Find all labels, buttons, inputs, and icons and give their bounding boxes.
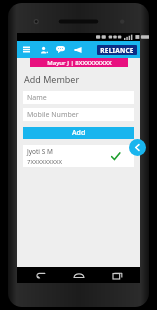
- button[interactable]: Add: [23, 127, 134, 139]
- button[interactable]: Menu: [20, 43, 33, 56]
- staticText: Mayur J | 8XXXXXXXXX: [47, 59, 112, 67]
- button[interactable]: Reliance: [97, 45, 137, 55]
- button[interactable]: Chat: [54, 43, 67, 56]
- button[interactable]: Name: [23, 91, 134, 104]
- button[interactable]: Announcements: [71, 43, 84, 56]
- button[interactable]: Jyoti S M: [23, 145, 134, 167]
- staticText: RELIANCE: [100, 46, 134, 55]
- button[interactable]: Profile: [37, 43, 50, 56]
- staticText: Mobile Number: [27, 110, 79, 120]
- staticText: Add Member: [24, 73, 80, 85]
- staticText: Jyoti S M: [27, 147, 53, 156]
- staticText: Add: [72, 128, 86, 138]
- staticText: 7XXXXXXXXX: [27, 158, 63, 166]
- button[interactable]: Home: [64, 267, 94, 283]
- button[interactable]: Back: [129, 139, 146, 156]
- button[interactable]: Back: [25, 267, 55, 283]
- button[interactable]: Mobile Number: [23, 108, 134, 121]
- button[interactable]: Mayur J | 8XXXXXXXXX: [30, 58, 128, 67]
- button[interactable]: Recent apps: [102, 267, 132, 283]
- staticText: Name: [27, 93, 47, 103]
